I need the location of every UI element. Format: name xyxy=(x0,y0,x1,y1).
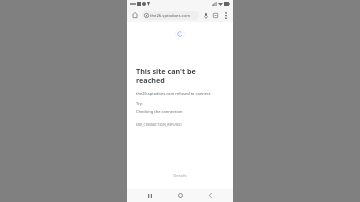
button[interactable]: the26.sptodoes.com xyxy=(142,11,199,20)
staticText: ERR_CONNECTION_REFUSED xyxy=(136,122,182,127)
button[interactable]: Back xyxy=(203,189,217,202)
staticText: Details xyxy=(173,173,187,178)
button[interactable]: Switch tabs xyxy=(211,11,220,20)
staticText: Checking the connection xyxy=(136,109,183,114)
button[interactable]: Reload xyxy=(174,28,186,40)
button[interactable]: Home xyxy=(173,189,187,202)
button[interactable]: Home xyxy=(130,10,140,20)
staticText: This site can't be reached xyxy=(136,66,224,85)
button[interactable]: Details xyxy=(169,171,191,180)
staticText: Try: xyxy=(136,101,143,106)
button[interactable]: More options xyxy=(221,11,230,20)
button[interactable]: Voice search xyxy=(201,11,210,20)
staticText: the26.sptodoes.com xyxy=(150,13,191,19)
button[interactable]: Recent apps xyxy=(143,189,157,202)
staticText: the26.sptodoes.com refused to connect. xyxy=(136,91,212,96)
